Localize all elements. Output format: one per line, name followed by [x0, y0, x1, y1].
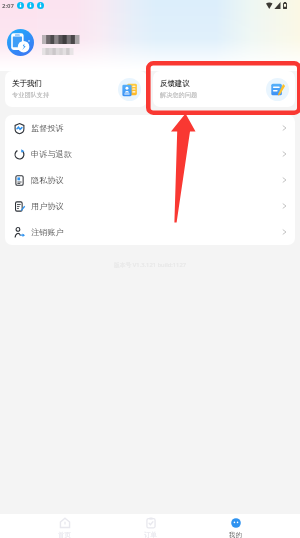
staticText: 我的 [229, 531, 242, 538]
button[interactable]: 监督投诉 [5, 115, 295, 141]
staticText: 隐私协议 [31, 175, 64, 185]
staticText: 2:07 [2, 2, 14, 10]
staticText: 专业团队支持 [12, 91, 50, 99]
staticText: 首页 [58, 531, 71, 538]
button[interactable]: 注销账户 [5, 219, 295, 245]
button[interactable]: 订单 [129, 514, 172, 538]
button[interactable]: 反馈建议 [153, 71, 295, 107]
other: Highlight annotation [0, 0, 300, 538]
staticText: 反馈建议 [160, 79, 190, 88]
staticText: 订单 [144, 531, 157, 538]
button[interactable]: 申诉与退款 [5, 141, 295, 167]
staticText: 用户协议 [31, 201, 64, 211]
button[interactable]: 首页 [43, 514, 86, 538]
staticText: 注销账户 [31, 227, 64, 237]
staticText: 关于我们 [12, 79, 42, 88]
button[interactable]: 用户协议 [5, 193, 295, 219]
button[interactable]: 我的 [214, 514, 257, 538]
staticText: 解决您的问题 [160, 91, 198, 99]
staticText: 监督投诉 [31, 123, 64, 133]
button[interactable]: 隐私协议 [5, 167, 295, 193]
button[interactable]: 关于我们 [5, 71, 147, 107]
staticText: 申诉与退款 [31, 149, 72, 159]
